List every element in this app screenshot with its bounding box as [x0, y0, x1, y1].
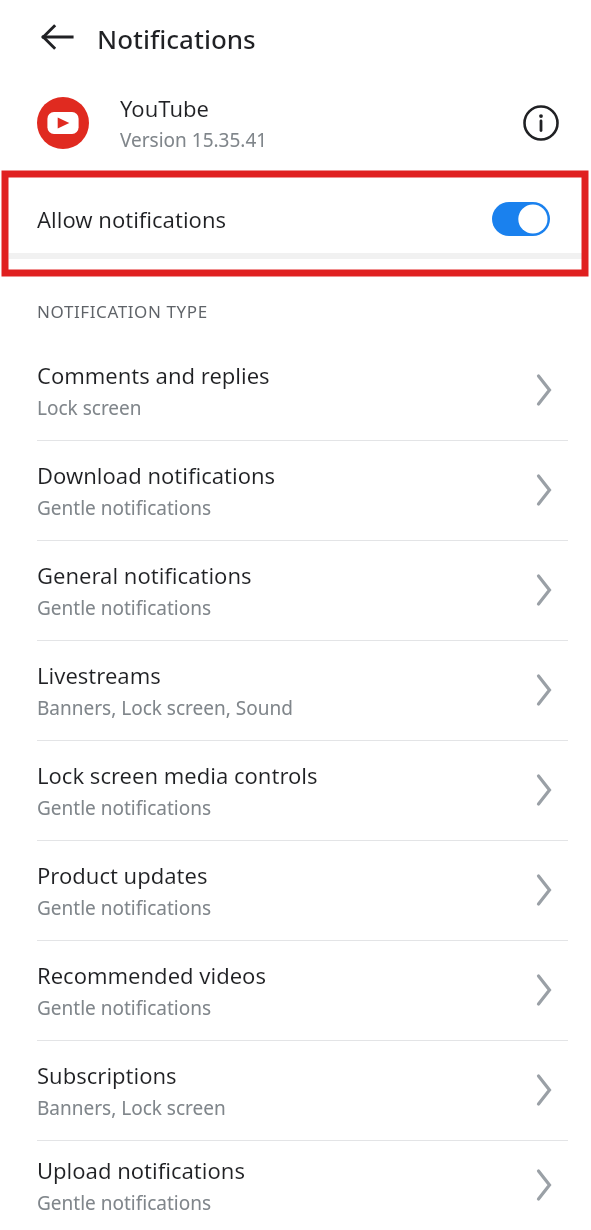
staticText: Gentle notifications: [37, 895, 212, 921]
staticText: Version 15.35.41: [120, 127, 268, 153]
button[interactable]: Recommended videos: [0, 940, 591, 1040]
button[interactable]: Back: [30, 10, 84, 64]
staticText: Banners, Lock screen, Sound: [37, 695, 293, 721]
staticText: Comments and replies: [37, 360, 270, 390]
button[interactable]: YouTube: [0, 73, 591, 173]
button[interactable]: Comments and replies: [0, 340, 591, 440]
button[interactable]: Upload notifications: [0, 1140, 591, 1230]
staticText: Recommended videos: [37, 960, 266, 990]
staticText: Allow notifications: [37, 204, 492, 234]
staticText: NOTIFICATION TYPE: [37, 300, 208, 323]
staticText: Notifications: [97, 21, 256, 56]
button[interactable]: Allow notifications: [0, 181, 591, 257]
staticText: Lock screen: [37, 395, 142, 421]
staticText: Banners, Lock screen: [37, 1095, 226, 1121]
button[interactable]: Subscriptions: [0, 1040, 591, 1140]
staticText: Upload notifications: [37, 1155, 245, 1185]
button[interactable]: Allow notifications toggle: [492, 201, 550, 237]
staticText: Download notifications: [37, 460, 276, 490]
staticText: Subscriptions: [37, 1060, 177, 1090]
button[interactable]: General notifications: [0, 540, 591, 640]
staticText: Gentle notifications: [37, 595, 212, 621]
staticText: Gentle notifications: [37, 495, 212, 521]
button[interactable]: App info: [513, 95, 569, 151]
button[interactable]: Lock screen media controls: [0, 740, 591, 840]
staticText: Product updates: [37, 860, 208, 890]
button[interactable]: Download notifications: [0, 440, 591, 540]
staticText: Gentle notifications: [37, 995, 212, 1021]
staticText: YouTube: [120, 93, 209, 123]
staticText: Gentle notifications: [37, 1190, 212, 1216]
button[interactable]: Livestreams: [0, 640, 591, 740]
button[interactable]: Product updates: [0, 840, 591, 940]
staticText: Gentle notifications: [37, 795, 212, 821]
staticText: Lock screen media controls: [37, 760, 318, 790]
staticText: Livestreams: [37, 660, 161, 690]
staticText: General notifications: [37, 560, 252, 590]
